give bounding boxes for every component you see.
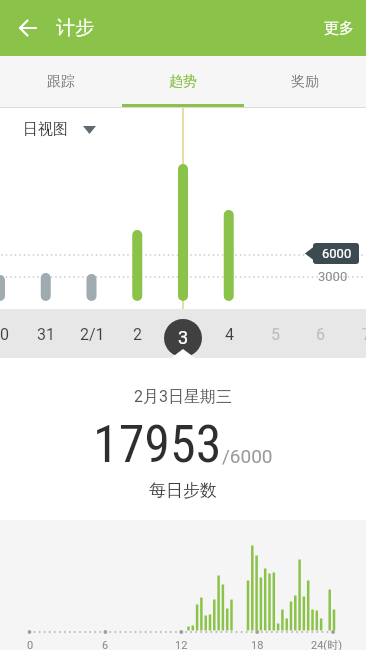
staticText: 日视图 <box>23 120 68 139</box>
button[interactable]: 日视图 <box>14 114 102 145</box>
staticText: 2/1 <box>80 325 105 344</box>
button[interactable]: 更多 <box>312 0 366 56</box>
staticText: 30 <box>0 325 9 344</box>
staticText: 7 <box>362 325 366 344</box>
button[interactable]: 跟踪 <box>0 56 122 107</box>
button[interactable]: 奖励 <box>244 56 366 107</box>
staticText: 3000 <box>318 269 348 284</box>
button[interactable]: 31 <box>23 309 69 358</box>
staticText: 6000 <box>322 246 352 261</box>
staticText: 3 <box>178 327 189 348</box>
staticText: 趋势 <box>169 73 197 91</box>
button[interactable]: 2 <box>114 309 160 358</box>
staticText: 2月3日星期三 <box>134 387 232 407</box>
staticText: /6000 <box>222 445 273 467</box>
staticText: 17953 <box>93 414 222 475</box>
button[interactable]: 6 <box>297 309 343 358</box>
staticText: 0 <box>27 639 34 650</box>
staticText: 奖励 <box>291 73 319 91</box>
staticText: 18 <box>251 639 264 650</box>
button[interactable]: 7 <box>343 309 366 358</box>
button[interactable]: 4 <box>206 309 252 358</box>
button[interactable]: 3 <box>160 309 206 358</box>
staticText: 每日步数 <box>149 480 217 501</box>
staticText: 6 <box>316 325 325 344</box>
staticText: 更多 <box>324 19 354 38</box>
staticText: 5 <box>271 325 280 344</box>
staticText: 6 <box>102 639 109 650</box>
staticText: 24(时) <box>311 638 342 650</box>
staticText: 4 <box>225 325 234 344</box>
button[interactable]: 2/1 <box>69 309 115 358</box>
staticText: 计步 <box>56 16 94 40</box>
button[interactable]: 趋势 <box>122 56 244 107</box>
staticText: 跟踪 <box>47 73 75 91</box>
staticText: 12 <box>175 639 188 650</box>
staticText: 2 <box>133 325 142 344</box>
button[interactable]: 30 <box>0 309 23 358</box>
button[interactable]: 5 <box>252 309 298 358</box>
staticText: 31 <box>37 325 55 344</box>
button[interactable] <box>0 0 56 56</box>
